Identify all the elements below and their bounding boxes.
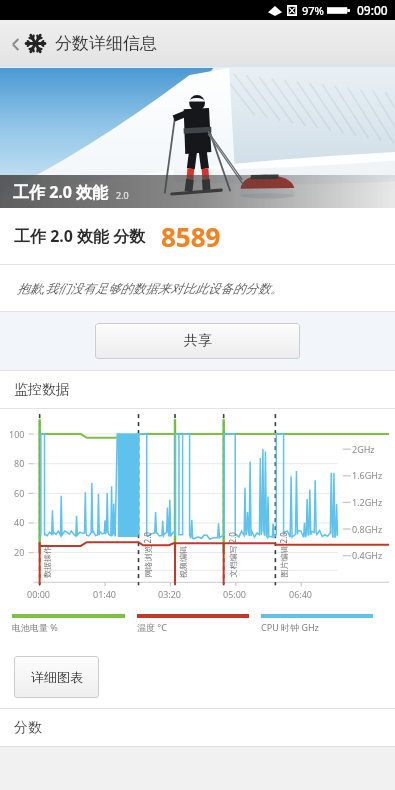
staticText: 05:00 [223,588,247,600]
staticText: 视频编辑 [178,546,188,578]
staticText: 0.4GHz [352,549,383,561]
staticText: 工作 2.0 效能 分数 [14,225,146,247]
staticText: 图片编辑 2.0 [277,531,288,577]
staticText: 100 [9,428,25,440]
staticText: 97% [302,3,324,18]
staticText: 工作 2.0 效能 [13,181,109,203]
button[interactable]: 详细图表 [14,656,99,698]
staticText: 8589 [161,219,221,254]
staticText: 电池电量 % [12,621,58,633]
button[interactable]: Back [5,34,25,54]
staticText: 数据操作 [42,546,52,578]
staticText: 0.8GHz [352,523,383,535]
staticText: 01:40 [93,588,117,600]
staticText: 温度 °C [137,621,167,633]
staticText: 06:40 [289,588,313,600]
staticText: 40 [14,516,25,528]
staticText: 2GHz [352,443,375,455]
staticText: 20 [14,546,25,558]
staticText: 分数详细信息 [55,33,157,54]
staticText: 分数 [14,719,42,737]
staticText: 网络浏览 2.0 [141,531,152,577]
staticText: 03:20 [158,588,182,600]
staticText: 监控数据 [14,381,70,399]
staticText: 共享 [184,332,212,350]
staticText: 09:00 [357,2,388,18]
staticText: 文档编写 2.0 [226,531,237,577]
staticText: 80 [14,457,25,469]
staticText: 2.0 [116,189,129,201]
staticText: 1.2GHz [352,496,383,508]
staticText: 抱歉,我们没有足够的数据来对比此设备的分数。 [17,280,283,297]
staticText: 00:00 [27,588,51,600]
staticText: 1.6GHz [352,469,383,481]
staticText: 详细图表 [31,669,83,685]
staticText: CPU 时钟 GHz [261,621,319,633]
staticText: 60 [14,487,25,499]
button[interactable]: 共享 [95,323,300,359]
